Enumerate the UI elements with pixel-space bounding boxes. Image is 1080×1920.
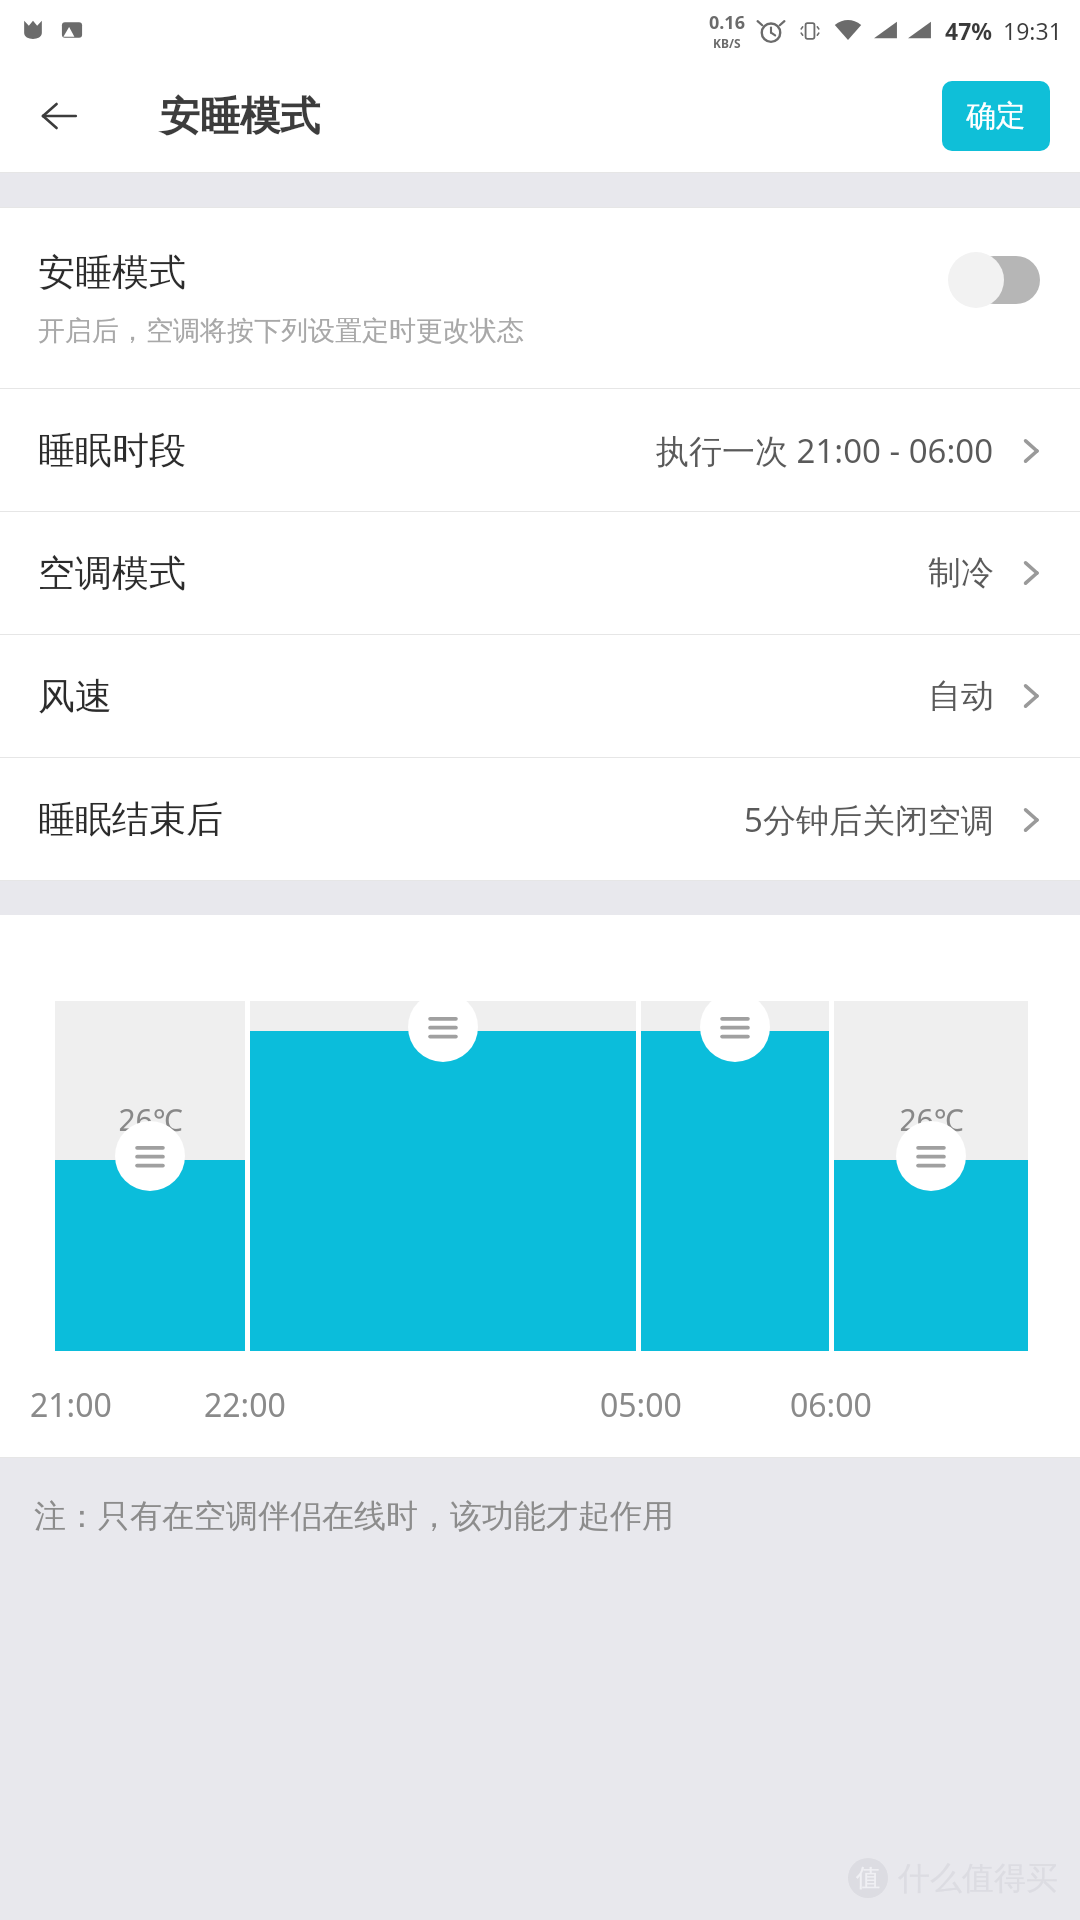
button[interactable]: 睡眠结束后 bbox=[0, 758, 1080, 880]
button[interactable]: 安睡模式 bbox=[0, 208, 1080, 388]
staticText: 制冷 bbox=[928, 552, 994, 594]
button[interactable]: 确定 bbox=[942, 81, 1050, 151]
staticText: 注：只有在空调伴侣在线时，该功能才起作用 bbox=[34, 1496, 674, 1536]
staticText: 确定 bbox=[966, 97, 1026, 135]
staticText: 28℃ bbox=[703, 1005, 768, 1046]
staticText: 05:00 bbox=[600, 1383, 682, 1427]
button[interactable]: Back bbox=[28, 85, 90, 147]
button[interactable]: 风速 bbox=[0, 635, 1080, 757]
staticText: 5分钟后关闭空调 bbox=[744, 797, 994, 842]
staticText: 26℃ bbox=[899, 1099, 964, 1140]
staticText: 47% bbox=[945, 15, 993, 46]
staticText: 28℃ bbox=[411, 1005, 476, 1046]
staticText: 21:00 bbox=[30, 1383, 112, 1427]
staticText: 22:00 bbox=[204, 1383, 286, 1427]
staticText: 26℃ bbox=[118, 1099, 183, 1140]
button[interactable]: 睡眠时段 bbox=[0, 389, 1080, 511]
staticText: 自动 bbox=[928, 675, 994, 717]
staticText: 什么值得买 bbox=[898, 1858, 1058, 1898]
staticText: 安睡模式 bbox=[160, 91, 320, 141]
staticText: 19:31 bbox=[1003, 15, 1062, 46]
staticText: KB/S bbox=[713, 35, 741, 51]
button[interactable]: Adjust temperature bbox=[115, 1121, 185, 1191]
staticText: 开启后，空调将按下列设置定时更改状态 bbox=[38, 314, 524, 348]
staticText: 空调模式 bbox=[38, 550, 186, 597]
staticText: 执行一次 21:00 - 06:00 bbox=[656, 428, 994, 473]
staticText: 0.16 bbox=[709, 10, 745, 35]
staticText: 06:00 bbox=[790, 1383, 872, 1427]
staticText: 安睡模式 bbox=[38, 249, 186, 296]
button[interactable]: 空调模式 bbox=[0, 512, 1080, 634]
button[interactable]: Adjust temperature bbox=[408, 992, 478, 1062]
staticText: 睡眠结束后 bbox=[38, 796, 223, 843]
staticText: 风速 bbox=[38, 673, 112, 720]
button[interactable]: Adjust temperature bbox=[896, 1121, 966, 1191]
staticText: 睡眠时段 bbox=[38, 427, 186, 474]
staticText: 值 bbox=[856, 1863, 880, 1893]
button[interactable]: Adjust temperature bbox=[700, 992, 770, 1062]
